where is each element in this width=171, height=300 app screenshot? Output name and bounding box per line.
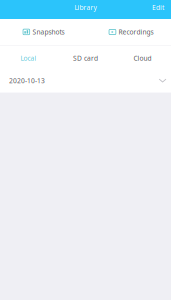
staticText: Cloud <box>133 54 151 63</box>
button[interactable]: Recordings <box>85 19 171 45</box>
staticText: Local <box>20 54 36 63</box>
staticText: Edit <box>152 3 164 12</box>
button[interactable]: Edit <box>145 2 171 16</box>
staticText: Library <box>74 3 96 12</box>
staticText: Snapshots <box>32 28 64 36</box>
staticText: 2020-10-13 <box>9 76 45 85</box>
button[interactable]: SD card <box>57 46 114 69</box>
button[interactable]: Cloud <box>114 46 171 69</box>
button[interactable]: 2020-10-13 <box>0 69 171 93</box>
button[interactable]: Local <box>0 46 57 69</box>
staticText: Recordings <box>118 28 153 36</box>
button[interactable]: Snapshots <box>0 19 85 45</box>
staticText: SD card <box>73 54 98 63</box>
